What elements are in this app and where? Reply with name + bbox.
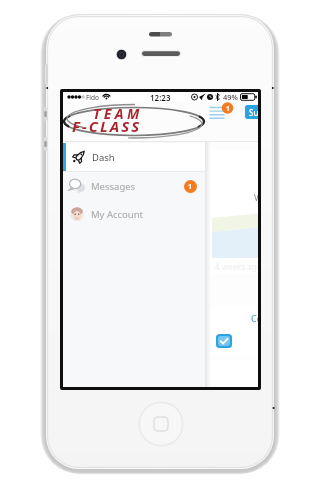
staticText: 12:23 (150, 92, 171, 102)
staticText: Su (249, 107, 258, 118)
staticText: F-CLASS (72, 116, 142, 136)
button[interactable]: Open navigation menu (207, 103, 234, 123)
staticText: My Account (91, 208, 144, 221)
staticText: Co (251, 312, 258, 324)
button[interactable]: Completed (218, 336, 230, 346)
staticText: 1 (188, 182, 193, 192)
staticText: 4 weeks ago (215, 261, 258, 272)
button[interactable]: My Account (63, 200, 205, 228)
button[interactable]: Dash (63, 143, 205, 171)
button[interactable]: Messages (63, 172, 205, 200)
staticText: Messages (91, 180, 136, 193)
button[interactable]: Su (245, 105, 258, 119)
staticText: Fido (86, 93, 99, 102)
staticText: TEAM (93, 104, 143, 123)
staticText: 1 (226, 104, 230, 113)
staticText: 49% (223, 92, 238, 102)
staticText: V (254, 192, 258, 203)
staticText: Dash (92, 151, 115, 164)
